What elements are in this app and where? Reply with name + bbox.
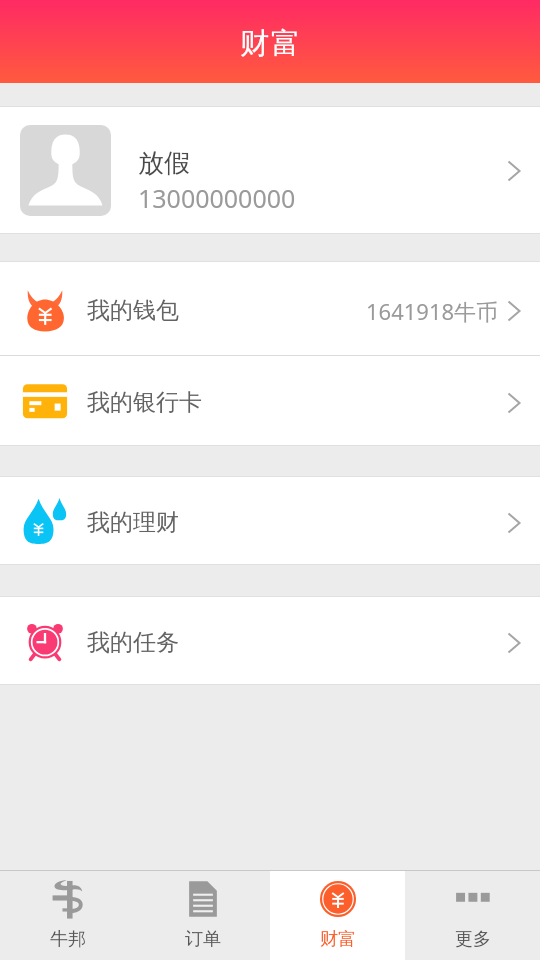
- button[interactable]: 我的钱包: [0, 262, 540, 355]
- button[interactable]: 我的银行卡: [0, 356, 540, 445]
- button[interactable]: 我的理财: [0, 477, 540, 564]
- staticText: 牛邦: [50, 928, 86, 951]
- staticText: 我的任务: [87, 628, 179, 657]
- staticText: 我的理财: [87, 508, 179, 537]
- staticText: 财富: [239, 25, 301, 62]
- button[interactable]: 财富: [270, 871, 405, 960]
- staticText: 财富: [320, 928, 356, 951]
- staticText: 更多: [455, 928, 491, 951]
- button[interactable]: 放假: [0, 107, 540, 233]
- staticText: 我的钱包: [87, 296, 179, 325]
- staticText: 1641918牛币: [366, 296, 499, 326]
- button[interactable]: 我的任务: [0, 597, 540, 684]
- staticText: 订单: [185, 928, 221, 951]
- staticText: 13000000000: [138, 181, 296, 215]
- button[interactable]: 牛邦: [0, 871, 135, 960]
- staticText: 我的银行卡: [87, 388, 202, 417]
- button[interactable]: 更多: [405, 871, 540, 960]
- staticText: 放假: [138, 147, 190, 180]
- button[interactable]: 订单: [135, 871, 270, 960]
